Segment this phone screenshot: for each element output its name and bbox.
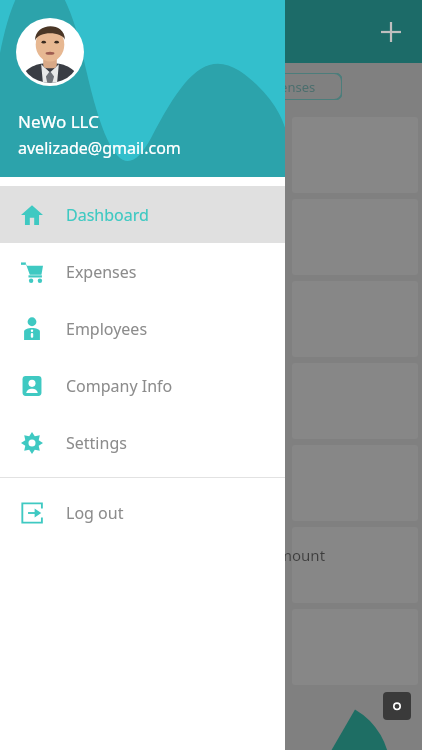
staticText: Dashboard (66, 204, 149, 226)
staticText: avelizade@gmail.com (18, 137, 181, 159)
staticText: Expenses (66, 261, 137, 283)
button[interactable]: Profile photo (16, 18, 84, 86)
button[interactable]: Camera (383, 692, 411, 720)
staticText: mount (278, 545, 326, 565)
button[interactable]: Employees (0, 300, 285, 357)
staticText: Log out (66, 502, 124, 524)
staticText: Settings (66, 432, 127, 454)
staticText: Company Info (66, 375, 173, 397)
button[interactable]: Dashboard (0, 186, 285, 243)
staticText: Employees (66, 318, 148, 340)
button[interactable] (292, 527, 418, 603)
staticText: Expenses (258, 78, 316, 96)
button[interactable]: Add (374, 15, 408, 49)
button[interactable]: Expenses (0, 243, 285, 300)
button[interactable]: Settings (0, 414, 285, 471)
button[interactable]: Company Info (0, 357, 285, 414)
button[interactable]: Log out (0, 484, 285, 541)
staticText: NeWo LLC (18, 110, 99, 133)
button[interactable]: Expenses (232, 73, 342, 100)
